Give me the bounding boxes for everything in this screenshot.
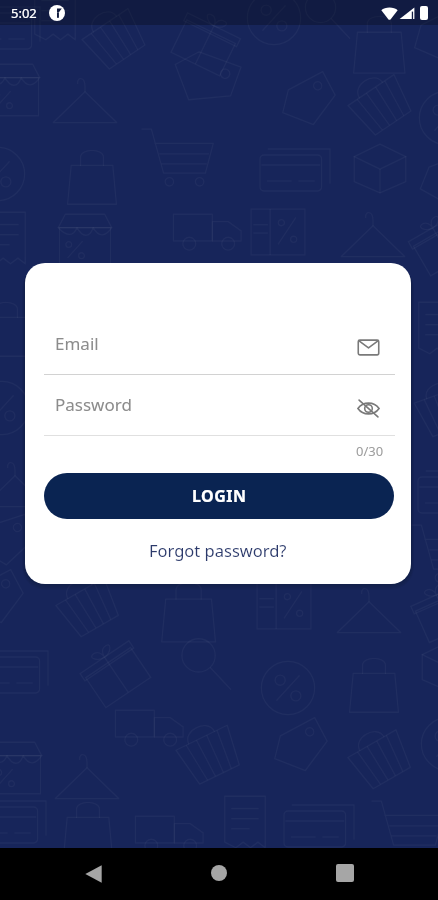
button[interactable]: Email — [354, 333, 382, 361]
staticText: Email — [55, 332, 99, 355]
staticText: 5:02 — [11, 4, 37, 22]
button[interactable]: Forgot password? — [137, 534, 299, 566]
button[interactable]: Recent apps — [321, 849, 369, 897]
button[interactable]: Toggle password visibility — [354, 394, 382, 422]
staticText: LOGIN — [192, 485, 247, 507]
button[interactable]: Home — [195, 849, 243, 897]
button[interactable]: LOGIN — [44, 473, 394, 519]
staticText: 0/30 — [356, 442, 384, 460]
button[interactable]: Email — [44, 323, 395, 363]
button[interactable]: Password — [44, 384, 395, 424]
staticText: Forgot password? — [149, 539, 287, 561]
staticText: Password — [55, 393, 132, 416]
button[interactable]: Back — [69, 850, 117, 898]
